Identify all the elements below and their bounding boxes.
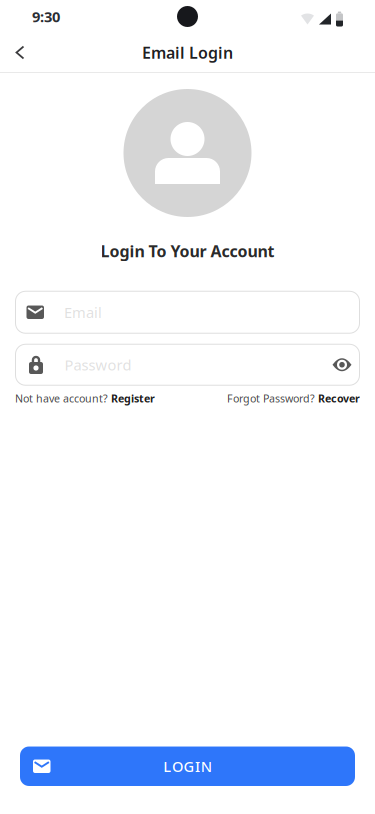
staticText: Email Login [142,42,233,63]
button[interactable]: Show password [332,357,360,372]
staticText: Forgot Password? [227,391,318,405]
button[interactable]: Back [0,37,26,67]
staticText: Not have account? [15,391,111,405]
button[interactable]: LOGIN [20,746,355,786]
button[interactable]: Forgot Password? [227,391,360,405]
staticText: 9:30 [32,7,60,26]
staticText: Login To Your Account [100,240,274,262]
button[interactable]: Not have account? [15,391,155,405]
staticText: Password [64,355,131,374]
staticText: LOGIN [163,756,212,776]
staticText: Recover [318,391,360,405]
staticText: Register [111,391,155,405]
staticText: Email [64,302,102,322]
